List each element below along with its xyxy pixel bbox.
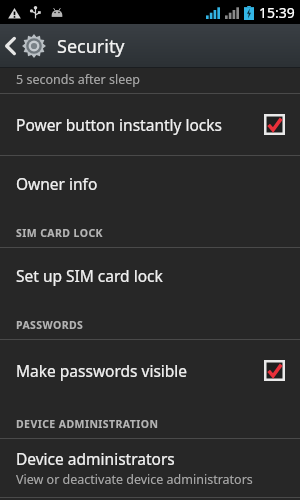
button[interactable]: Set up SIM card lock: [0, 248, 300, 302]
staticText: DEVICE ADMINISTRATION: [16, 417, 159, 431]
staticText: PASSWORDS: [16, 318, 84, 332]
staticText: Make passwords visible: [16, 360, 264, 381]
staticText: View or deactivate device administrators: [16, 471, 253, 488]
staticText: SIM CARD LOCK: [16, 226, 103, 240]
other: Back: [5, 37, 16, 55]
staticText: Power button instantly locks: [16, 114, 264, 135]
staticText: Set up SIM card lock: [16, 265, 163, 286]
button[interactable]: Back: [0, 33, 300, 59]
button[interactable]: Make passwords visible: [0, 340, 300, 401]
staticText: Device administrators: [16, 448, 175, 469]
button[interactable]: Owner info: [0, 156, 300, 210]
staticText: 15:39: [259, 3, 295, 22]
staticText: 5 seconds after sleep: [16, 71, 140, 88]
button[interactable]: Power button instantly locks: [0, 94, 300, 155]
button[interactable]: 5 seconds after sleep: [0, 68, 300, 93]
staticText: Security: [57, 34, 125, 59]
button[interactable]: Device administrators: [0, 439, 300, 497]
staticText: Owner info: [16, 173, 98, 194]
